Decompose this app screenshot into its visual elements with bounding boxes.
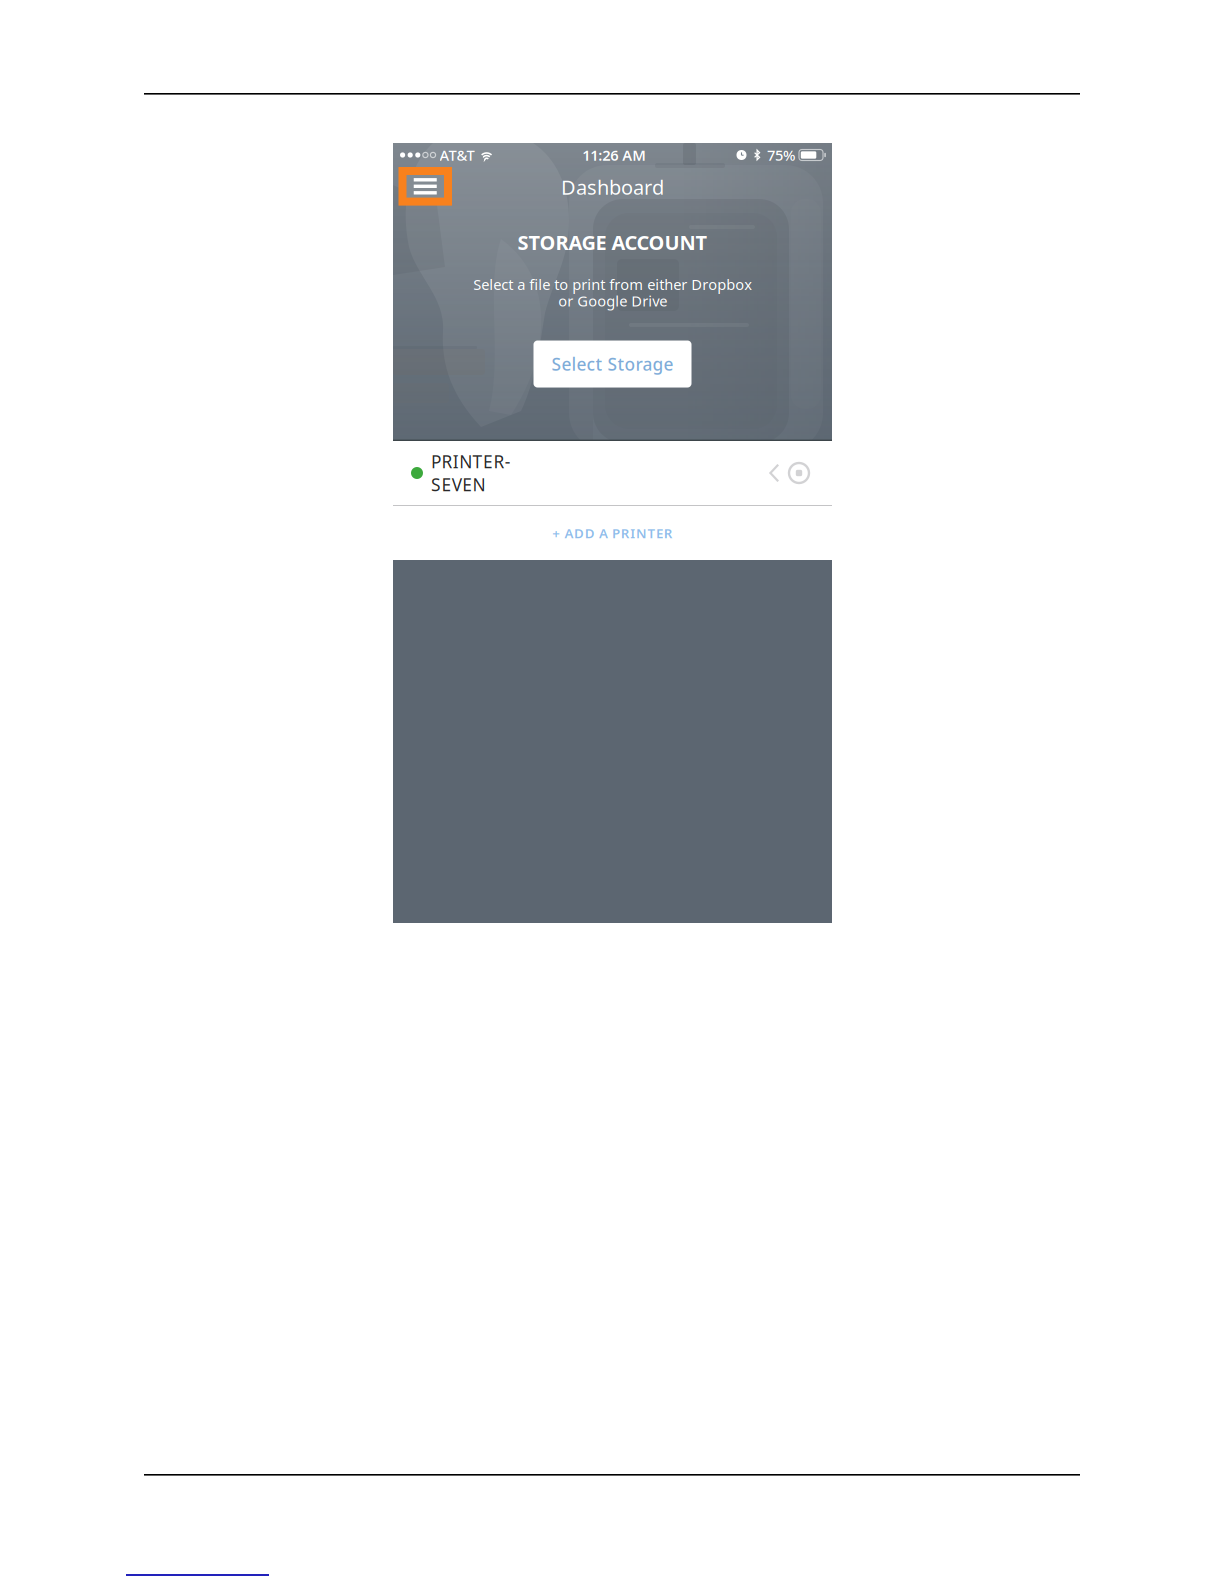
button[interactable]: Select Storage (533, 340, 691, 387)
staticText: + ADD A PRINTER (552, 524, 673, 542)
staticText: 11:26 AM (582, 145, 646, 165)
staticText: STORAGE ACCOUNT (517, 229, 707, 256)
staticText: Select a file to print from either Dropb… (473, 275, 752, 311)
staticText: PRINTER-SEVEN (431, 450, 511, 496)
staticText: 75% (767, 145, 795, 165)
button[interactable]: + ADD A PRINTER (393, 506, 832, 560)
staticText: AT&T (440, 145, 475, 165)
staticText: Select Storage (551, 352, 673, 375)
staticText: Dashboard (561, 174, 664, 200)
button[interactable]: PRINTER-SEVEN (393, 441, 832, 505)
button[interactable]: Menu (398, 167, 452, 206)
